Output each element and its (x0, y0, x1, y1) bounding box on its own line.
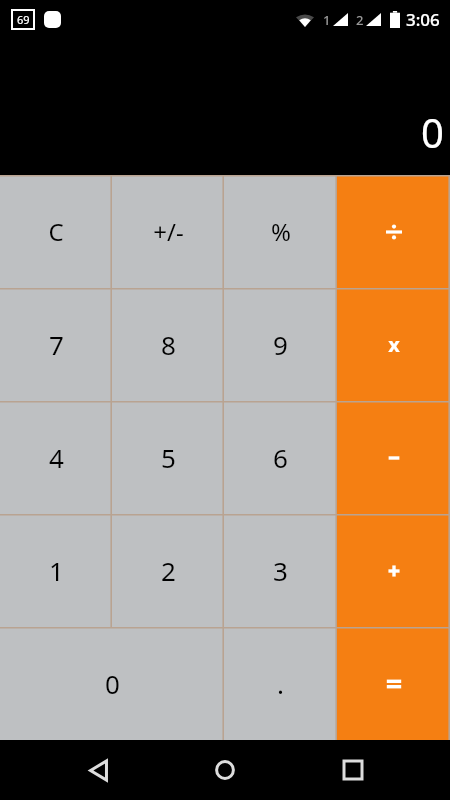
button[interactable]: . (224, 627, 337, 740)
staticText: 6 (273, 440, 288, 475)
staticText: 7 (49, 327, 64, 362)
staticText: 2 (356, 11, 364, 29)
button[interactable]: 7 (0, 288, 112, 401)
staticText: 5 (161, 440, 176, 475)
staticText: 3:06 (406, 8, 440, 31)
staticText: 0 (421, 105, 444, 159)
button[interactable]: 0 (0, 627, 224, 740)
button[interactable]: 6 (224, 401, 337, 514)
button[interactable]: 2 (112, 514, 224, 627)
staticText: 9 (273, 327, 288, 362)
staticText: +/- (153, 215, 184, 248)
staticText: x (388, 331, 400, 358)
button[interactable] (337, 627, 450, 740)
staticText: 1 (323, 11, 331, 29)
button[interactable]: % (224, 175, 337, 288)
button[interactable]: 4 (0, 401, 112, 514)
button[interactable] (337, 514, 450, 627)
staticText: 0 (105, 666, 120, 701)
button[interactable]: x (337, 288, 450, 401)
button[interactable]: +/- (112, 175, 224, 288)
button[interactable]: 9 (224, 288, 337, 401)
staticText: 8 (161, 327, 176, 362)
button[interactable]: Back (68, 740, 128, 800)
button[interactable]: 5 (112, 401, 224, 514)
staticText: 3 (273, 553, 288, 588)
button[interactable]: Home (195, 740, 255, 800)
staticText: 69 (17, 12, 30, 27)
staticText: C (48, 215, 64, 248)
button[interactable]: 8 (112, 288, 224, 401)
button[interactable]: Recent apps (323, 740, 383, 800)
staticText: % (271, 215, 291, 248)
button[interactable] (337, 175, 450, 288)
staticText: 4 (49, 440, 64, 475)
staticText: 1 (49, 553, 64, 588)
staticText: 2 (161, 553, 176, 588)
button[interactable]: 3 (224, 514, 337, 627)
staticText: . (277, 666, 284, 701)
button[interactable] (337, 401, 450, 514)
button[interactable]: 1 (0, 514, 112, 627)
button[interactable]: C (0, 175, 112, 288)
